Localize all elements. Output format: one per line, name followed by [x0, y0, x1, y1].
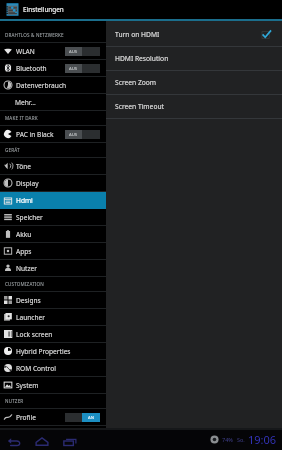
button[interactable]: Datenverbrauch	[0, 77, 106, 93]
button[interactable]: Hdmi	[0, 192, 106, 209]
button[interactable]: Apps	[0, 243, 106, 259]
button[interactable]: HDMI Resolution	[106, 47, 282, 70]
staticText: HDMI Resolution	[115, 54, 169, 63]
staticText: Designs	[16, 296, 41, 305]
button[interactable]: Hybrid Properties	[0, 343, 106, 359]
button[interactable]: System	[0, 377, 106, 393]
staticText: Mehr...	[15, 98, 36, 107]
button[interactable]: WLAN	[0, 43, 106, 59]
button[interactable]: Launcher	[0, 309, 106, 325]
button[interactable]: Bluetooth	[0, 60, 106, 76]
staticText: AN	[88, 415, 94, 421]
button[interactable]: Akku	[0, 226, 106, 242]
staticText: Speicher	[16, 213, 43, 222]
staticText: Lock screen	[16, 330, 53, 339]
button[interactable]: Screen Zoom	[106, 71, 282, 94]
button[interactable]: Profile	[0, 409, 106, 425]
button[interactable]: Screen Timeout	[106, 95, 282, 118]
staticText: AUS	[69, 66, 78, 72]
button[interactable]: Back	[7, 434, 21, 448]
staticText: AUS	[69, 49, 78, 55]
staticText: NUTZER	[5, 398, 24, 404]
button[interactable]: Turn on HDMI	[106, 23, 282, 46]
staticText: WLAN	[16, 47, 35, 56]
staticText: CUSTOMIZATION	[5, 281, 44, 287]
staticText: DRAHTLOS & NETZWERKE	[5, 32, 64, 38]
staticText: System	[16, 381, 39, 390]
staticText: So.	[237, 436, 245, 443]
staticText: Turn on HDMI	[115, 30, 160, 39]
staticText: Einstellungen	[23, 5, 64, 14]
staticText: PAC in Black	[16, 130, 54, 139]
staticText: Hdmi	[16, 196, 33, 205]
staticText: Apps	[16, 247, 32, 256]
staticText: Nutzer	[16, 264, 38, 273]
button[interactable]: Recent apps	[63, 434, 77, 448]
button[interactable]: Mehr...	[0, 94, 106, 110]
staticText: MAKE IT DARK	[5, 115, 38, 121]
staticText: 19:06	[248, 432, 277, 447]
button[interactable]: Speicher	[0, 209, 106, 225]
staticText: 74%	[222, 436, 233, 443]
button[interactable]: Display	[0, 175, 106, 191]
staticText: Launcher	[16, 313, 45, 322]
staticText: Hybrid Properties	[16, 347, 71, 356]
staticText: Screen Zoom	[115, 78, 157, 87]
staticText: Datenverbrauch	[16, 81, 67, 90]
button[interactable]: Home	[35, 434, 49, 448]
staticText: Töne	[16, 162, 31, 171]
staticText: Akku	[16, 230, 32, 239]
button[interactable]: Settings	[6, 3, 19, 16]
staticText: GERÄT	[5, 147, 20, 153]
button[interactable]: Designs	[0, 292, 106, 308]
button[interactable]: Lock screen	[0, 326, 106, 342]
staticText: Profile	[16, 413, 36, 422]
staticText: Screen Timeout	[115, 102, 164, 111]
staticText: AUS	[69, 132, 78, 138]
button[interactable]: Nutzer	[0, 260, 106, 276]
button[interactable]: ROM Control	[0, 360, 106, 376]
staticText: Display	[16, 179, 39, 188]
button[interactable]: PAC in Black	[0, 126, 106, 142]
button[interactable]: Töne	[0, 158, 106, 174]
staticText: ROM Control	[16, 364, 56, 373]
staticText: Bluetooth	[16, 64, 47, 73]
